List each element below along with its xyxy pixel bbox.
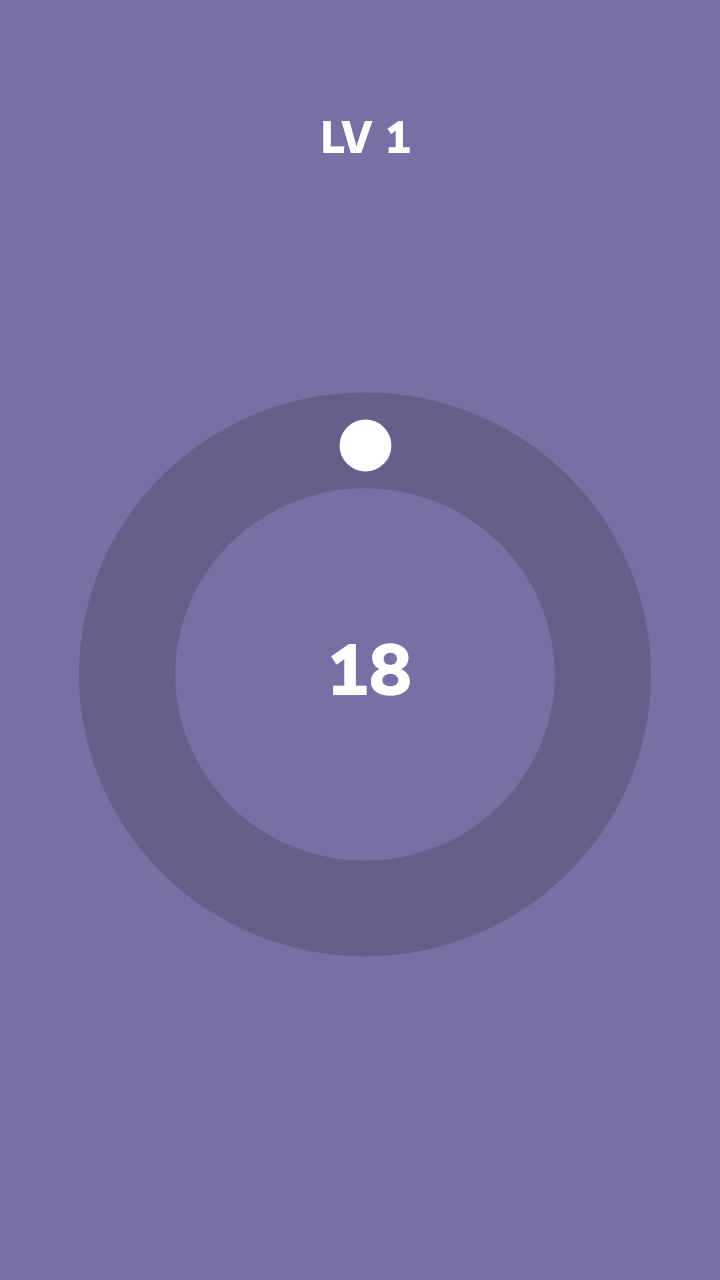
staticText: LV 1 — [320, 109, 413, 164]
button[interactable]: Tap to jump — [0, 0, 720, 1280]
staticText: 18 — [326, 624, 412, 713]
